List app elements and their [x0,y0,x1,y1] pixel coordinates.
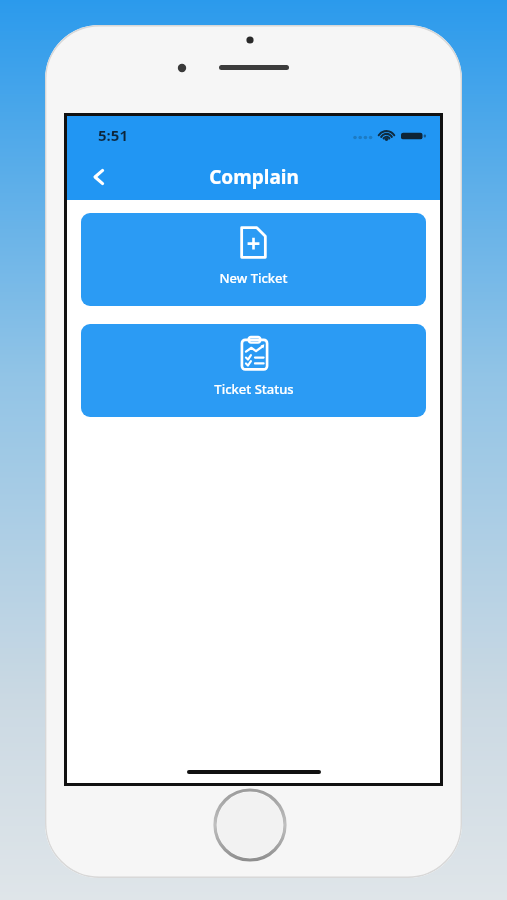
button[interactable]: Ticket Status [81,324,426,417]
button[interactable]: New Ticket [81,213,426,306]
staticText: 5:51 [98,125,128,145]
staticText: Ticket Status [214,380,294,398]
staticText: New Ticket [219,269,288,287]
staticText: Complain [209,164,299,190]
button[interactable]: Back [79,157,119,197]
